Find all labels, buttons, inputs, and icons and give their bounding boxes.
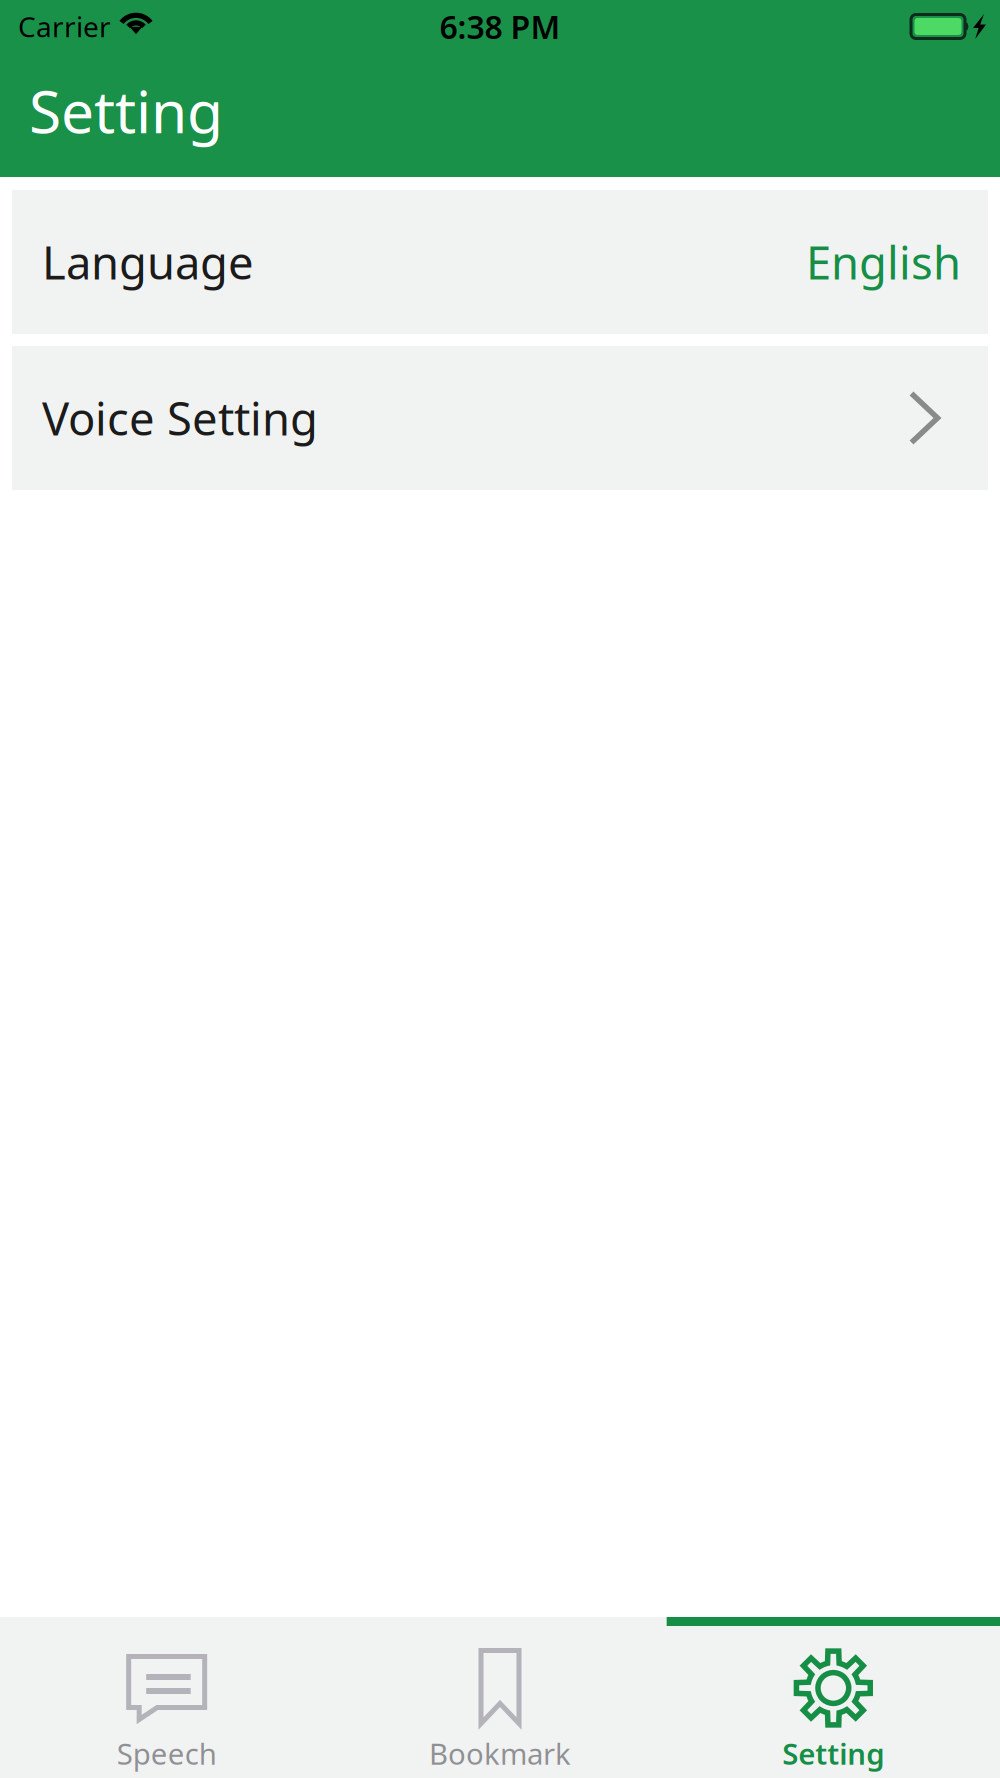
staticText: 6:38 PM [439,5,560,48]
button[interactable]: Setting [667,1617,1000,1778]
staticText: Setting [29,71,223,149]
staticText: Voice Setting [42,388,318,448]
button[interactable]: Voice Setting [12,346,988,490]
staticText: Speech [117,1734,217,1773]
button[interactable]: Language [12,190,988,334]
staticText: English [806,232,961,292]
button[interactable]: Bookmark [333,1617,667,1778]
staticText: Carrier [18,8,111,45]
staticText: Language [42,232,254,292]
staticText: Setting [782,1734,884,1773]
staticText: Bookmark [429,1734,571,1773]
button[interactable]: Speech [0,1617,333,1778]
